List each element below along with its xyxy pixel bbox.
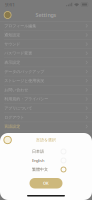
staticText: 表示設定 [4,60,20,65]
button[interactable]: 利用規約・プライバシー [0,95,92,104]
button[interactable]: Profile [3,10,13,20]
staticText: パスワード変更 [4,51,32,56]
staticText: 利用規約・プライバシー [4,96,48,101]
staticText: 言語設定 [4,124,20,129]
staticText: 日本語 [32,149,44,154]
staticText: 繁體中文 [32,167,48,172]
staticText: アプリについて [4,106,32,111]
staticText: 通知設定 [4,32,20,37]
staticText: お問い合わせ [4,87,28,92]
button[interactable]: 言語設定 [0,122,92,131]
button[interactable]: ストレージと使用状況 [0,76,92,85]
button[interactable]: English [0,156,92,165]
staticText: English [32,158,44,163]
staticText: プロフィール編集 [4,23,36,28]
button[interactable]: データのバックアップ [0,67,92,76]
button[interactable]: プロフィール編集 [0,21,92,31]
button[interactable]: Close [3,135,13,145]
button[interactable]: パスワード変更 [0,49,92,58]
staticText: ログアウト [4,115,24,120]
button[interactable]: 日本語 [0,147,92,156]
staticText: ストレージと使用状況 [4,78,44,83]
staticText: 言語を選択 [36,137,56,142]
button[interactable]: お問い合わせ [0,85,92,95]
staticText: サウンド [4,42,20,46]
staticText: OK [43,181,49,186]
button[interactable]: 繁體中文 [0,165,92,174]
staticText: 9:41 [5,1,15,8]
staticText: データのバックアップ [4,69,44,74]
button[interactable]: 表示設定 [0,58,92,67]
button[interactable]: 通知設定 [0,30,92,40]
button[interactable]: OK [29,178,62,188]
staticText: Settings [35,11,56,19]
